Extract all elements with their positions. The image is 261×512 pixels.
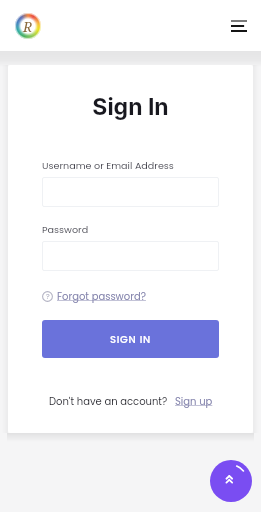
staticText: Sign In: [42, 93, 219, 121]
staticText: ?: [46, 292, 50, 302]
button[interactable]: Menu: [226, 13, 252, 39]
staticText: Username or Email Address: [42, 159, 174, 172]
staticText: SIGN IN: [110, 332, 151, 346]
staticText: Forgot password?: [57, 289, 146, 303]
staticText: Don't have an account?: [49, 394, 168, 408]
staticText: Password: [42, 223, 89, 236]
staticText: R: [23, 17, 33, 36]
button[interactable]: Logo: [15, 13, 41, 39]
button[interactable]: ?: [42, 289, 146, 303]
button[interactable]: Scroll to top: [210, 460, 252, 502]
button[interactable]: Sign up: [175, 394, 213, 408]
button[interactable]: [42, 241, 219, 271]
button[interactable]: [42, 177, 219, 207]
button[interactable]: SIGN IN: [42, 320, 219, 358]
